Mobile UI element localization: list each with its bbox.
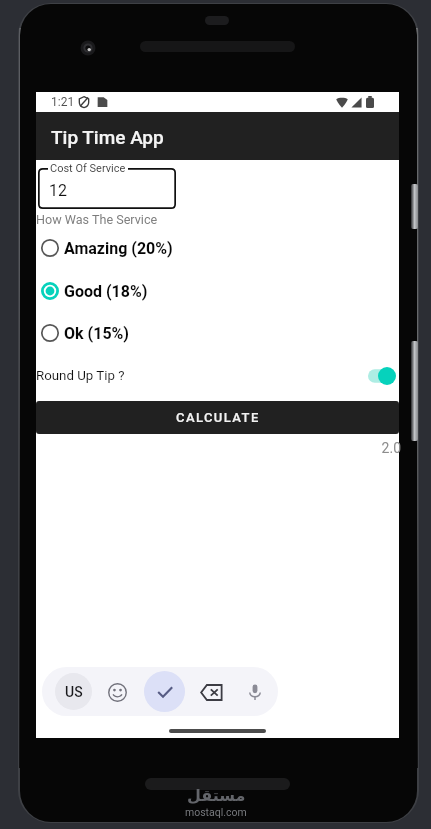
staticText: 2.0 [38, 440, 401, 456]
staticText: مستقل [187, 786, 246, 805]
button[interactable]: Emoji [99, 674, 135, 710]
button[interactable]: 12 [38, 168, 176, 209]
button[interactable]: Good (18%) [36, 273, 399, 309]
staticText: Tip Time App [51, 126, 164, 148]
staticText: mostaql.com [185, 806, 247, 818]
button[interactable]: Done [144, 671, 185, 712]
staticText: Ok (15%) [64, 324, 130, 343]
staticText: Cost Of Service [50, 162, 126, 175]
button[interactable]: Ok (15%) [36, 315, 399, 351]
staticText: Amazing (20%) [64, 239, 173, 258]
staticText: US [65, 684, 83, 700]
button[interactable]: Round Up Tip ? [36, 359, 399, 393]
button[interactable]: US [55, 673, 92, 710]
staticText: 12 [49, 181, 67, 200]
staticText: Good (18%) [64, 282, 148, 301]
staticText: Round Up Tip ? [36, 368, 125, 384]
button[interactable]: CALCULATE [36, 401, 399, 434]
button[interactable]: Voice input [237, 674, 273, 710]
button[interactable]: Amazing (20%) [36, 230, 399, 266]
staticText: How Was The Service [36, 212, 158, 227]
staticText: 1:21 [51, 95, 75, 109]
staticText: CALCULATE [176, 410, 260, 425]
button[interactable]: Backspace [193, 674, 229, 710]
